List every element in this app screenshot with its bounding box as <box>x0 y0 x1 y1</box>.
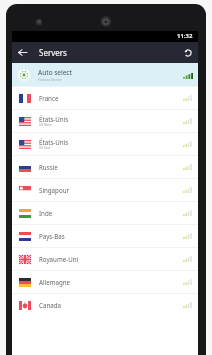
staticText: Servers <box>39 47 67 58</box>
button[interactable]: France <box>12 87 198 109</box>
button[interactable]: Royaume-Uni <box>12 248 198 270</box>
staticText: France <box>39 94 59 102</box>
button[interactable]: Allemagne <box>12 271 198 293</box>
staticText: Pays-Bas <box>39 232 65 240</box>
staticText: États-Unis <box>39 115 69 123</box>
button[interactable]: Pays-Bas <box>12 225 198 247</box>
button[interactable]: Refresh <box>179 42 196 63</box>
staticText: Canada <box>39 301 61 309</box>
staticText: États-Unis <box>39 138 69 146</box>
button[interactable]: Russie <box>12 156 198 178</box>
staticText: Royaume-Uni <box>39 255 79 263</box>
button[interactable]: Inde <box>12 202 198 224</box>
staticText: US East <box>39 146 51 150</box>
staticText: Auto select <box>38 68 72 77</box>
staticText: US West <box>39 123 52 127</box>
button[interactable]: Back <box>14 42 31 63</box>
staticText: 11:32 <box>177 32 193 40</box>
button[interactable]: Auto select <box>12 63 198 86</box>
button[interactable]: Canada <box>12 294 198 316</box>
staticText: Fastest Server <box>38 77 62 82</box>
staticText: Inde <box>39 209 53 217</box>
staticText: Allemagne <box>39 278 71 286</box>
staticText: Russie <box>39 163 58 171</box>
staticText: Singapour <box>39 186 70 194</box>
button[interactable]: États-Unis <box>12 133 198 155</box>
button[interactable]: Singapour <box>12 179 198 201</box>
button[interactable]: États-Unis <box>12 110 198 132</box>
